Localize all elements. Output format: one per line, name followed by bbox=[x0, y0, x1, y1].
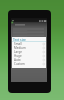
button[interactable]: Small bbox=[12, 42, 46, 46]
staticText: Text size bbox=[13, 38, 26, 42]
button[interactable]: Custom bbox=[12, 62, 46, 66]
staticText: Custom bbox=[14, 62, 25, 66]
button[interactable]: Medium bbox=[12, 46, 46, 50]
staticText: Small bbox=[14, 42, 22, 46]
staticText: Large bbox=[14, 50, 23, 54]
button[interactable]: Auto bbox=[12, 58, 46, 62]
button[interactable]: Huge bbox=[12, 54, 46, 58]
button[interactable]: Large bbox=[12, 50, 46, 54]
staticText: Medium bbox=[14, 46, 26, 50]
staticText: Auto bbox=[14, 58, 21, 62]
staticText: Huge bbox=[14, 54, 22, 58]
